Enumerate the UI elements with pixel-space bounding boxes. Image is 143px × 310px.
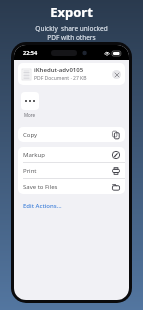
staticText: More bbox=[24, 112, 36, 118]
button[interactable]: Close bbox=[112, 70, 121, 79]
staticText: 22:54 bbox=[23, 49, 38, 56]
button[interactable]: Copy bbox=[18, 127, 125, 142]
button[interactable]: Print bbox=[18, 163, 125, 178]
staticText: Quickly share unlocked PDF with others bbox=[35, 24, 108, 42]
staticText: Print bbox=[23, 167, 112, 175]
staticText: Edit Actions… bbox=[23, 202, 62, 210]
staticText: iKhedut-adv0105 bbox=[34, 66, 84, 74]
staticText: Save to Files bbox=[23, 183, 112, 191]
staticText: Copy bbox=[23, 131, 112, 139]
staticText: Markup bbox=[23, 151, 112, 159]
button[interactable]: Markup bbox=[18, 147, 125, 162]
button[interactable]: More bbox=[21, 92, 39, 118]
staticText: PDF Document · 27 KB bbox=[34, 75, 87, 82]
button[interactable]: Edit Actions… bbox=[18, 200, 67, 212]
button[interactable]: Save to Files bbox=[18, 179, 125, 194]
button[interactable]: iKhedut-adv0105 bbox=[18, 63, 125, 85]
staticText: Export bbox=[50, 3, 93, 21]
